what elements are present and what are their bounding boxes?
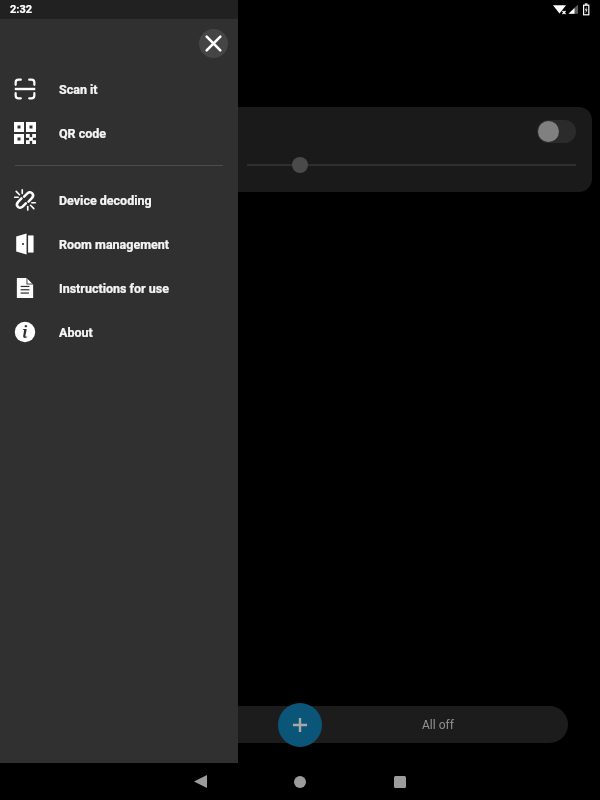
button[interactable]: Add device xyxy=(278,703,322,747)
button[interactable]: i xyxy=(0,310,238,354)
staticText: Instructions for use xyxy=(59,281,169,296)
staticText: QR code xyxy=(59,126,107,141)
staticText: Room management xyxy=(59,237,169,252)
staticText: Device decoding xyxy=(59,193,152,208)
button[interactable]: Back xyxy=(180,763,220,800)
button[interactable]: Device decoding xyxy=(0,178,238,222)
button[interactable]: Home xyxy=(280,763,320,800)
staticText: All off xyxy=(422,718,454,732)
button[interactable]: All off xyxy=(200,706,568,743)
button[interactable]: Room management xyxy=(0,222,238,266)
button[interactable]: Power toggle xyxy=(537,120,576,143)
button[interactable]: QR code xyxy=(0,111,238,155)
button[interactable]: Instructions for use xyxy=(0,266,238,310)
staticText: About xyxy=(59,325,93,340)
button[interactable]: Close xyxy=(199,29,228,58)
staticText: i xyxy=(22,321,28,343)
staticText: 2:32 xyxy=(10,3,33,16)
button[interactable]: Scan it xyxy=(0,67,238,111)
button[interactable]: Recent apps xyxy=(380,763,420,800)
staticText: Scan it xyxy=(59,82,98,97)
